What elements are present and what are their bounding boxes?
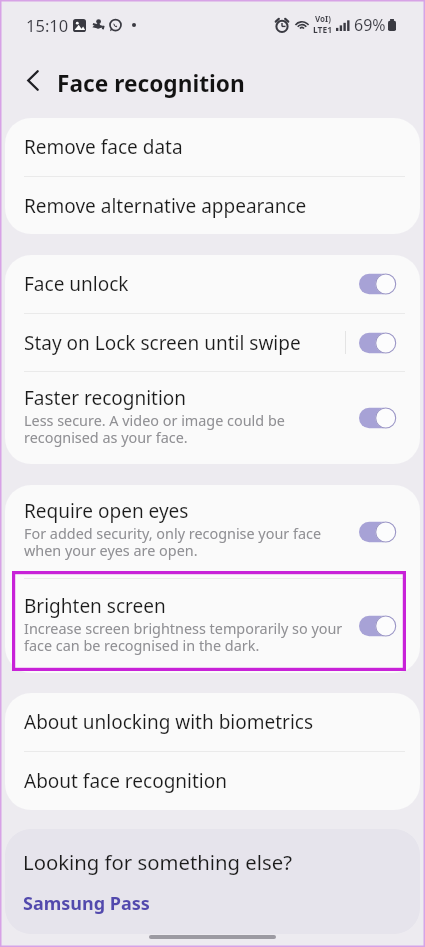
staticText: Face recognition — [57, 68, 245, 99]
staticText: Remove face data — [24, 134, 183, 160]
staticText: Require open eyes — [24, 498, 189, 524]
staticText: Stay on Lock screen until swipe — [24, 330, 301, 356]
staticText: Face unlock — [24, 271, 129, 297]
button[interactable]: Samsung Pass — [23, 891, 150, 916]
button[interactable]: About unlocking with biometrics — [5, 693, 420, 751]
button[interactable]: Stay on Lock screen until swipe — [5, 314, 420, 371]
button[interactable]: About face recognition — [5, 752, 420, 810]
staticText: Faster recognition — [24, 385, 187, 411]
staticText: LTE1 — [313, 24, 333, 36]
button[interactable]: Face unlock — [5, 255, 420, 313]
button[interactable]: Toggle — [359, 331, 396, 355]
staticText: For added security, only recognise your … — [24, 524, 322, 560]
staticText: 69% — [354, 14, 386, 36]
button[interactable]: Toggle — [359, 406, 396, 430]
staticText: Looking for something else? — [23, 848, 292, 876]
staticText: Remove alternative appearance — [24, 193, 307, 219]
button[interactable]: Brighten screen — [5, 579, 420, 673]
staticText: Increase screen brightness temporarily s… — [24, 619, 343, 655]
staticText: Samsung Pass — [23, 891, 150, 916]
staticText: Less secure. A video or image could be r… — [24, 411, 285, 447]
button[interactable]: Faster recognition — [5, 372, 420, 464]
button[interactable]: Require open eyes — [5, 485, 420, 578]
button[interactable]: Toggle — [359, 520, 396, 544]
button[interactable]: Toggle — [359, 272, 396, 296]
button[interactable]: Toggle — [359, 614, 396, 638]
staticText: About face recognition — [24, 768, 227, 794]
button[interactable]: Remove alternative appearance — [5, 177, 420, 234]
staticText: Brighten screen — [24, 593, 166, 619]
staticText: VoI) — [315, 13, 331, 24]
button[interactable]: Remove face data — [5, 118, 420, 176]
staticText: 15:10 — [26, 14, 69, 36]
staticText: About unlocking with biometrics — [24, 709, 314, 735]
button[interactable]: Back — [16, 63, 50, 97]
